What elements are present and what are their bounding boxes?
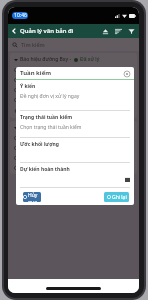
button[interactable]: Upload xyxy=(99,25,112,38)
staticText: Ghi lại xyxy=(112,194,127,201)
button[interactable]: Tiếp nhận xyxy=(14,107,46,114)
staticText: Chọn trạng thái tuần kiểm xyxy=(20,124,82,131)
button[interactable]: Báo hiệu đường Bxy - xyxy=(10,53,137,118)
button[interactable]: More xyxy=(124,106,133,115)
staticText: Content xyxy=(20,66,39,73)
staticText: Chưa xử lý xyxy=(80,124,106,131)
staticText: Trạng thái tuần kiểm xyxy=(20,114,73,121)
button[interactable]: Báo hiệu đường Bxy - xyxy=(10,121,137,174)
staticText: Ý kiến xyxy=(20,83,36,90)
staticText: Tuần kiểm xyxy=(58,107,83,114)
staticText: Tuần kiểm xyxy=(20,69,52,77)
button[interactable]: Filter xyxy=(125,25,138,38)
button[interactable]: Ghi lại xyxy=(104,192,129,202)
staticText: Giao việc xyxy=(96,107,118,114)
staticText: Đề nghị đơn vị xử lý ngay xyxy=(20,93,80,100)
button[interactable]: Giao việc xyxy=(89,107,119,114)
staticText: Tìm kiếm xyxy=(21,41,45,48)
staticText: Hủy qua xyxy=(28,192,41,202)
staticText: 0 km - Lưỡng Ba Chè xyxy=(20,144,69,151)
button[interactable]: Hủy qua xyxy=(23,192,41,202)
staticText: 07/04/2022 11:04 xyxy=(20,164,61,171)
button[interactable]: Back xyxy=(8,25,20,37)
staticText: Tiếp nhận xyxy=(21,107,45,114)
button[interactable]: Tuần kiểm xyxy=(51,107,84,114)
staticText: Content xyxy=(20,134,39,141)
staticText: 10:46 xyxy=(14,12,27,19)
staticText: 0 km - Lưỡng Ba Chè xyxy=(20,76,69,83)
button[interactable]: Sort xyxy=(112,25,125,38)
staticText: Báo hiệu đường Bxy - xyxy=(20,56,72,63)
staticText: Ước khối lượng xyxy=(20,141,59,148)
button[interactable]: Close xyxy=(122,69,131,78)
staticText: 07/04/2022 11:04 xyxy=(20,96,61,103)
staticText: Báo hiệu đường Bxy - xyxy=(20,124,72,131)
staticText: Đã xử lý xyxy=(80,56,100,63)
staticText: Dự kiến hoàn thành xyxy=(20,166,70,173)
staticText: Quản lý văn bản đi xyxy=(20,27,74,35)
staticText: Tuần đường thủy xyxy=(20,86,61,93)
